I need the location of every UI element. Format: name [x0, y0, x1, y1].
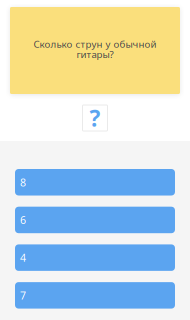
staticText: 7	[20, 288, 26, 302]
staticText: 4	[20, 251, 26, 265]
button[interactable]: 7	[15, 282, 175, 309]
button[interactable]: 8	[15, 169, 175, 195]
staticText: гитары?	[76, 47, 113, 61]
button[interactable]: Help	[82, 105, 107, 131]
button[interactable]: 4	[15, 244, 175, 271]
button[interactable]: 6	[15, 207, 175, 233]
staticText: 6	[20, 213, 26, 227]
staticText: ?	[89, 103, 100, 133]
staticText: Сколько струн у обычной	[33, 37, 156, 50]
staticText: 8	[20, 175, 26, 189]
